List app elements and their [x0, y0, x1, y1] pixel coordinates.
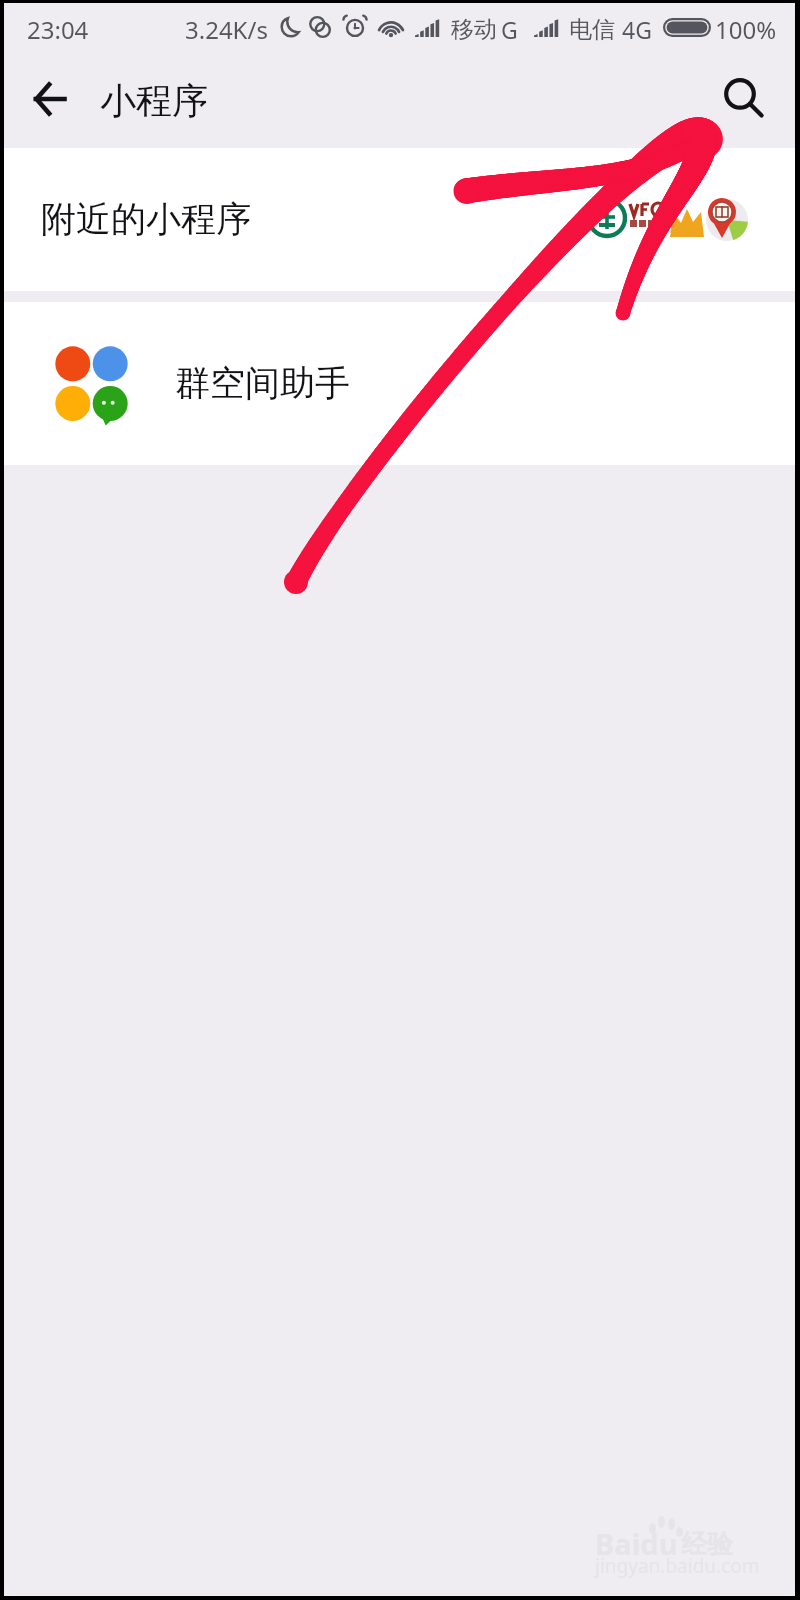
staticText: 附近的小程序: [41, 197, 251, 241]
staticText: 23:04: [27, 13, 89, 46]
staticText: 小程序: [100, 78, 208, 123]
button[interactable]: 附近的小程序: [4, 148, 795, 291]
staticText: G: [501, 14, 518, 45]
staticText: 移动: [451, 15, 497, 44]
staticText: 3.24K/s: [185, 13, 268, 46]
staticText: 经验: [681, 1528, 733, 1561]
staticText: jingyan.baidu.com: [595, 1553, 760, 1579]
staticText: 群空间助手: [175, 361, 350, 405]
button[interactable]: 搜索: [710, 64, 782, 136]
button[interactable]: 群空间助手: [4, 302, 795, 465]
button[interactable]: 返回: [13, 63, 85, 135]
staticText: Baidu: [595, 1524, 678, 1563]
staticText: 100%: [715, 13, 777, 46]
staticText: 4G: [622, 14, 652, 45]
staticText: 电信: [569, 15, 615, 44]
